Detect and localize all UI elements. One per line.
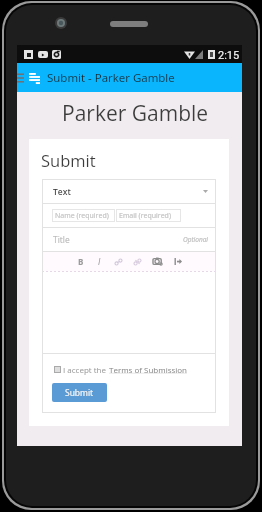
button[interactable]: I accept the <box>54 364 188 375</box>
staticText: B <box>78 256 84 267</box>
staticText: Name (required) <box>55 211 109 221</box>
staticText: Email (required) <box>119 211 171 221</box>
staticText: 2:15 <box>218 49 240 62</box>
button[interactable]: Insert link <box>112 252 125 271</box>
staticText: Optional <box>183 235 208 244</box>
staticText: Submit - Parker Gamble <box>47 70 175 86</box>
button[interactable]: Italic <box>93 252 106 271</box>
button[interactable]: Insert page break <box>171 252 184 271</box>
staticText: I <box>98 256 101 268</box>
staticText: Title <box>53 234 70 246</box>
button[interactable]: Submit <box>52 383 107 402</box>
button[interactable]: Title <box>42 228 216 251</box>
button[interactable]: Terms of Submission <box>109 364 188 375</box>
button[interactable]: Navigation menu <box>26 71 43 86</box>
button[interactable]: Bold <box>74 252 87 271</box>
staticText: I accept the <box>63 364 109 375</box>
staticText: Submit <box>65 387 94 399</box>
button[interactable]: Insert image <box>151 252 164 271</box>
button[interactable]: Name (required) <box>52 209 115 222</box>
staticText: Text <box>53 186 71 198</box>
button[interactable]: Text <box>42 179 216 203</box>
button[interactable]: Email (required) <box>116 209 181 222</box>
button[interactable]: Remove link <box>131 252 144 271</box>
staticText: Parker Gamble <box>62 99 209 128</box>
staticText: Submit <box>41 149 96 171</box>
